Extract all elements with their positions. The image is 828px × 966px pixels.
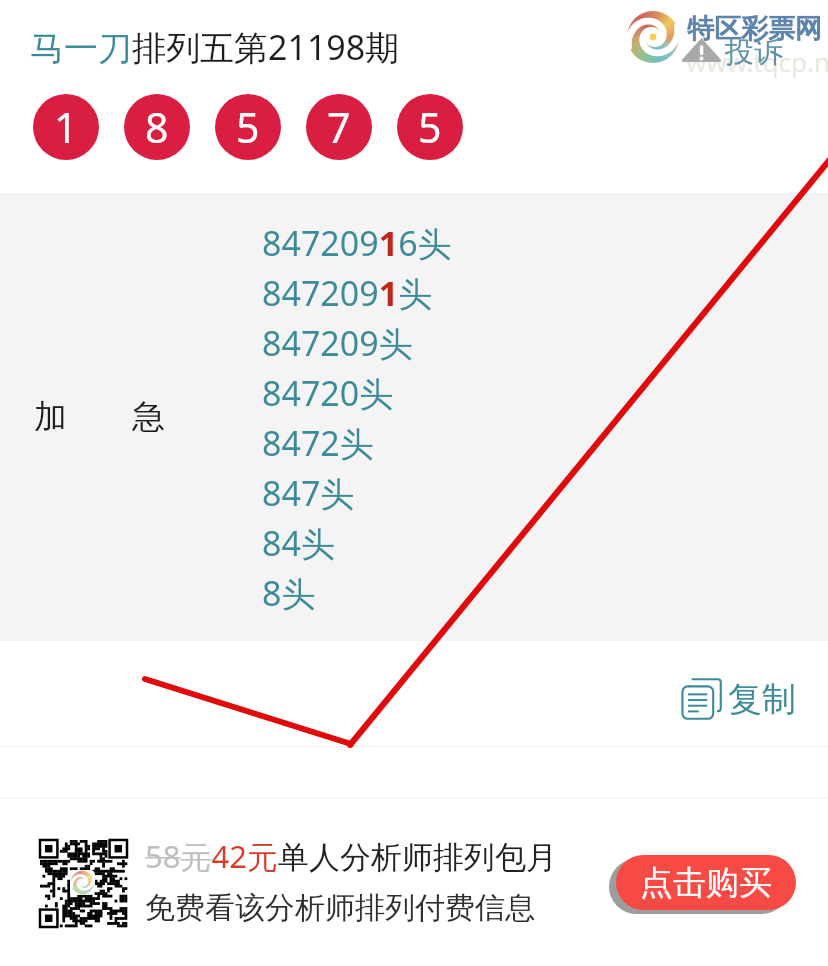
staticText: 7	[327, 99, 351, 155]
staticText: 免费看该分析师排列付费信息	[145, 889, 535, 927]
staticText: 点击购买	[640, 862, 772, 904]
staticText: 84头	[262, 520, 335, 566]
staticText: 5	[418, 99, 442, 155]
staticText: 847209头	[262, 320, 413, 366]
staticText: 急	[132, 396, 165, 438]
staticText: 加	[34, 396, 67, 438]
staticText: 1	[54, 99, 78, 155]
staticText: 8472头	[262, 420, 374, 466]
staticText: 847头	[262, 470, 355, 516]
staticText: www.tqcp.net	[686, 44, 828, 79]
staticText: 特区彩票网	[687, 12, 822, 46]
button[interactable]: 投诉	[679, 34, 791, 66]
staticText: 投诉	[725, 34, 783, 66]
staticText: 5	[236, 99, 260, 155]
staticText: 84720916头	[262, 220, 452, 266]
staticText: 复制	[728, 678, 796, 721]
staticText: 84720头	[262, 370, 394, 416]
staticText: 8472091头	[262, 270, 433, 316]
button[interactable]: 点击购买	[616, 855, 796, 910]
staticText: 8	[145, 99, 169, 155]
button[interactable]: 复制	[681, 677, 796, 720]
staticText: 8头	[262, 570, 316, 616]
staticText: 马一刀排列五第21198期	[30, 24, 400, 70]
staticText: 58元42元单人分析师排列包月	[145, 835, 557, 877]
